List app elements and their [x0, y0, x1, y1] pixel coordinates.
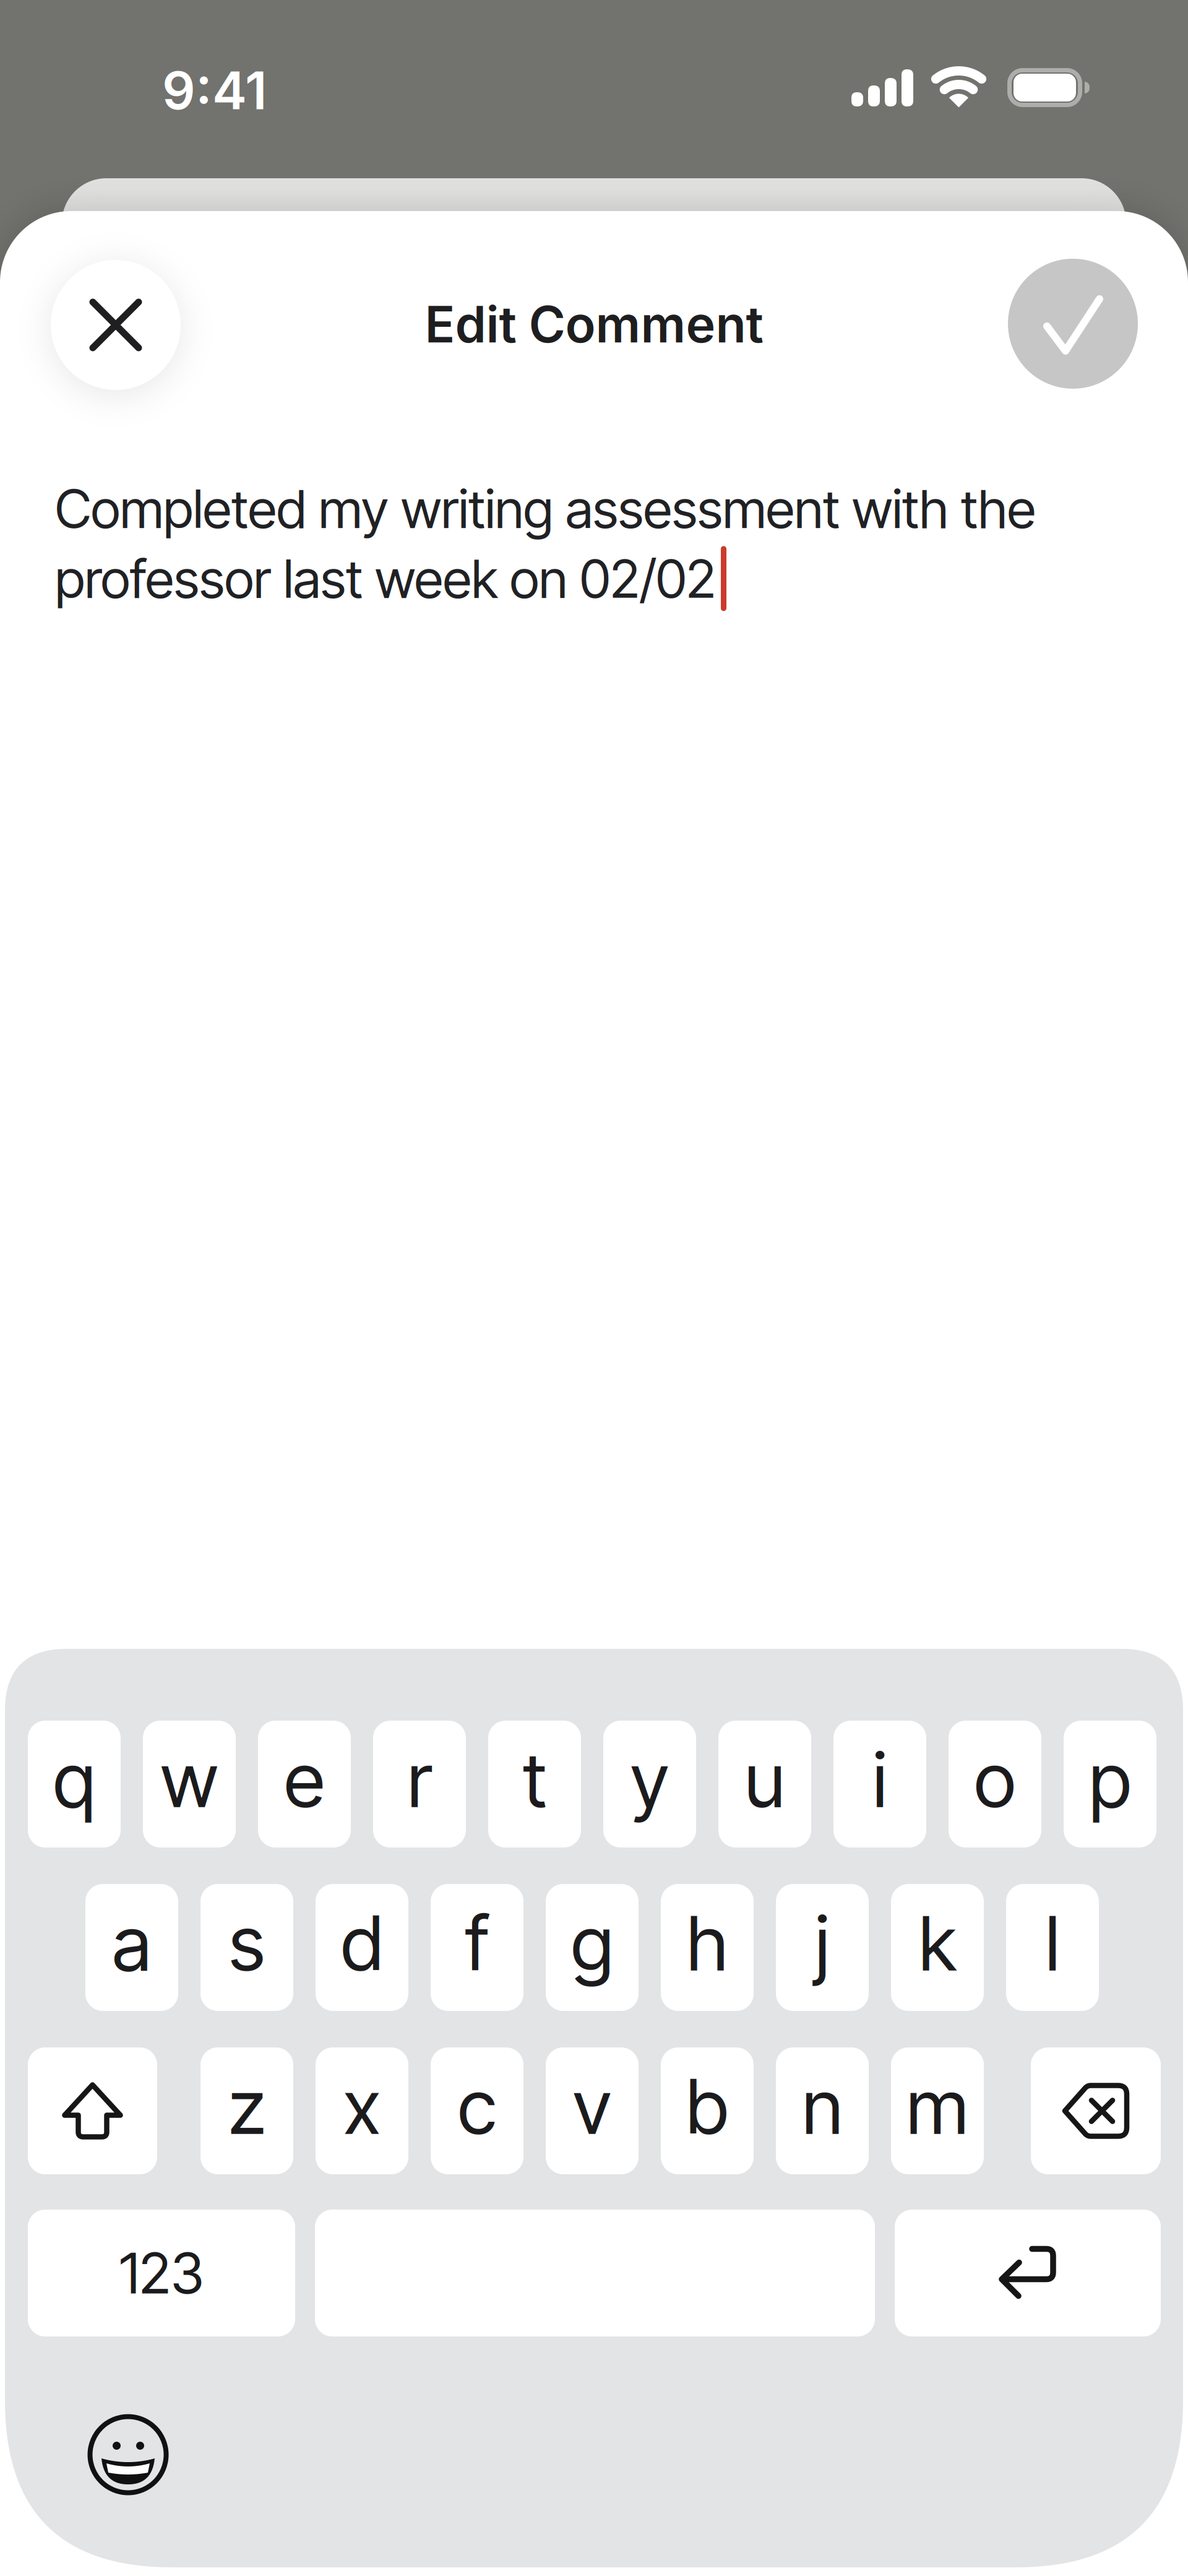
staticText: 9:41 — [162, 59, 267, 122]
button[interactable]: Numbers — [28, 2210, 295, 2336]
staticText: r — [407, 1734, 432, 1825]
button[interactable]: f — [431, 1884, 523, 2011]
button[interactable]: y — [603, 1721, 696, 1848]
staticText: f — [465, 1898, 489, 1989]
button[interactable]: t — [488, 1721, 581, 1848]
button[interactable]: Close — [51, 260, 181, 390]
button[interactable]: Emoji — [87, 2414, 169, 2496]
button[interactable]: g — [546, 1884, 639, 2011]
staticText: Edit Comment — [425, 294, 763, 355]
staticText: t — [523, 1734, 546, 1825]
button[interactable]: x — [316, 2047, 408, 2174]
staticText: professor last week on 02/02 — [55, 547, 716, 610]
button[interactable]: Return — [895, 2210, 1161, 2336]
button[interactable]: Confirm — [1008, 259, 1138, 389]
button[interactable]: k — [891, 1884, 984, 2011]
button[interactable]: Delete — [1031, 2047, 1161, 2174]
button[interactable]: s — [200, 1884, 293, 2011]
staticText: l — [1045, 1898, 1060, 1989]
staticText: g — [571, 1898, 613, 1989]
staticText: i — [873, 1734, 887, 1825]
staticText: Completed my writing assessment with the — [55, 477, 1036, 540]
staticText: z — [228, 2061, 265, 2152]
staticText: q — [53, 1734, 95, 1825]
staticText: 123 — [119, 2239, 204, 2307]
staticText: h — [687, 1898, 728, 1989]
button[interactable]: i — [833, 1721, 926, 1848]
button[interactable]: Shift — [28, 2047, 157, 2174]
button[interactable]: m — [891, 2047, 984, 2174]
staticText: o — [974, 1734, 1016, 1825]
staticText: m — [906, 2061, 968, 2152]
button[interactable]: p — [1064, 1721, 1156, 1848]
button[interactable]: w — [143, 1721, 236, 1848]
button[interactable]: d — [316, 1884, 408, 2011]
button[interactable]: h — [661, 1884, 754, 2011]
staticText: b — [686, 2061, 728, 2152]
button[interactable]: o — [949, 1721, 1041, 1848]
button[interactable]: l — [1006, 1884, 1099, 2011]
staticText: a — [112, 1898, 151, 1989]
staticText: c — [458, 2061, 496, 2152]
staticText: k — [919, 1898, 956, 1989]
staticText: x — [343, 2061, 381, 2152]
button[interactable]: n — [776, 2047, 869, 2174]
button[interactable]: e — [258, 1721, 351, 1848]
staticText: y — [631, 1734, 669, 1825]
button[interactable]: u — [718, 1721, 811, 1848]
staticText: p — [1089, 1734, 1131, 1825]
button[interactable]: v — [546, 2047, 639, 2174]
staticText: e — [284, 1734, 325, 1825]
button[interactable]: a — [85, 1884, 178, 2011]
button[interactable]: z — [200, 2047, 293, 2174]
button[interactable]: r — [373, 1721, 466, 1848]
staticText: j — [815, 1898, 829, 1989]
staticText: u — [745, 1734, 785, 1825]
staticText: s — [229, 1898, 265, 1989]
button[interactable]: b — [661, 2047, 754, 2174]
staticText: d — [341, 1898, 383, 1989]
button[interactable]: c — [431, 2047, 523, 2174]
staticText: w — [161, 1734, 218, 1825]
button[interactable]: j — [776, 1884, 869, 2011]
staticText: v — [573, 2061, 611, 2152]
staticText: n — [802, 2061, 842, 2152]
button[interactable]: q — [28, 1721, 121, 1848]
